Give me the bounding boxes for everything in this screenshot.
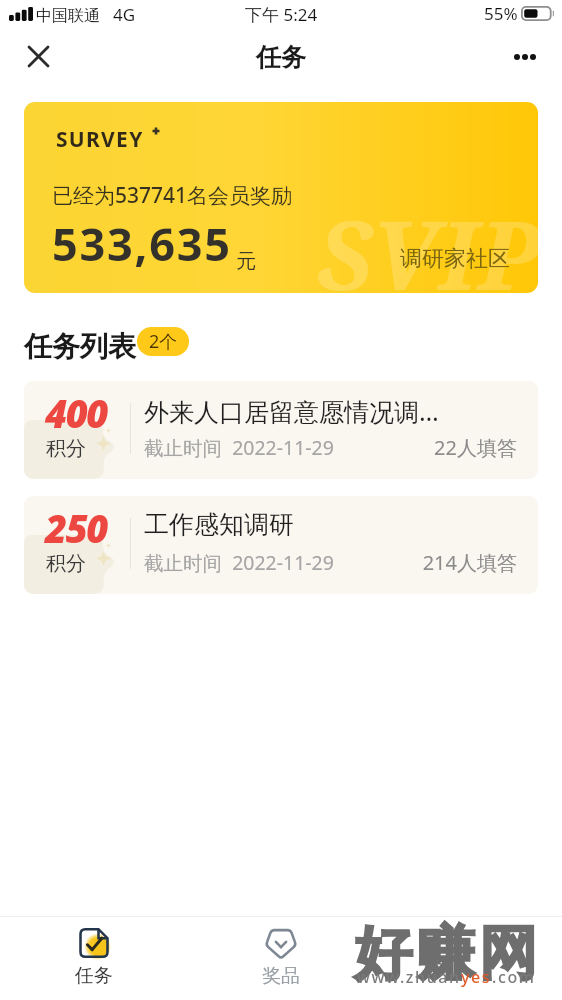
staticText: 2个 — [149, 329, 178, 354]
staticText: 533,635 — [52, 213, 232, 274]
staticText: SVIP — [317, 188, 538, 293]
button[interactable]: 任务 — [54, 928, 134, 998]
button[interactable]: SVIP — [24, 102, 538, 293]
staticText: 截止时间 2022-11-29 — [144, 434, 334, 461]
staticText: 已经为537741名会员奖励 — [52, 181, 293, 210]
staticText: 外来人口居留意愿情况调… — [144, 394, 439, 428]
staticText: 元 — [236, 249, 256, 274]
button[interactable]: 2个 — [137, 327, 189, 356]
staticText: 截止时间 2022-11-29 — [144, 549, 334, 576]
button[interactable]: 250 — [24, 496, 538, 594]
button[interactable]: Close — [16, 34, 61, 79]
staticText: 214人填答 — [417, 549, 517, 576]
staticText: 任务 — [75, 964, 113, 988]
staticText: 工作感知调研 — [144, 509, 294, 540]
staticText: 积分 — [46, 436, 86, 461]
staticText: 下午 5:24 — [245, 3, 318, 26]
staticText: 任务 — [256, 42, 306, 73]
staticText: SURVEY — [56, 125, 144, 154]
staticText: yes — [461, 966, 492, 988]
staticText: 中国联通 — [36, 6, 100, 26]
staticText: www.zhuan — [357, 966, 461, 988]
staticText: 22人填答 — [417, 434, 517, 461]
staticText: 好赚网 — [354, 917, 542, 990]
button[interactable]: More options — [502, 34, 547, 79]
staticText: .com — [492, 966, 536, 988]
staticText: 奖品 — [262, 964, 300, 988]
staticText: 任务列表 — [24, 329, 136, 364]
staticText: 55% — [484, 2, 518, 25]
staticText: 调研家社区 — [400, 245, 510, 273]
staticText: 4G — [113, 3, 136, 26]
staticText: 积分 — [46, 551, 86, 576]
staticText: 400 — [45, 387, 107, 439]
button[interactable]: 400 — [24, 381, 538, 479]
button[interactable]: 奖品 — [241, 928, 321, 998]
staticText: 250 — [45, 502, 107, 554]
